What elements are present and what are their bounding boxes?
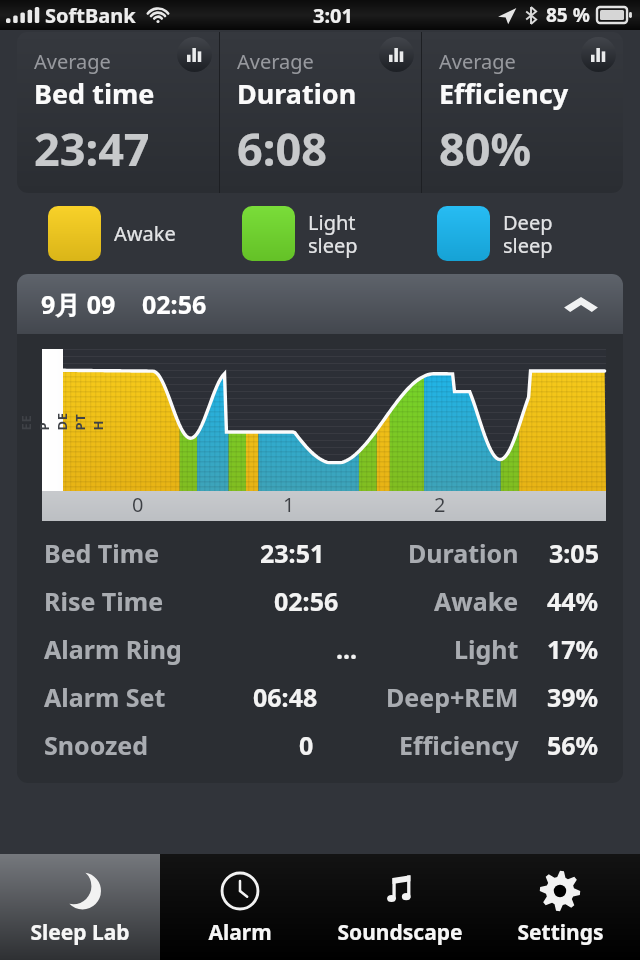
button[interactable]: Soundscape — [320, 854, 480, 960]
staticText: Duration — [237, 75, 357, 112]
staticText: Light — [454, 632, 519, 666]
staticText: 9月 09 — [41, 287, 116, 321]
staticText: 56% — [547, 728, 599, 762]
button[interactable]: Sleep Lab — [0, 854, 160, 960]
staticText: Efficiency — [399, 728, 519, 762]
staticText: 3:01 — [313, 2, 353, 29]
staticText: Alarm Ring — [44, 632, 182, 666]
staticText: 06:48 — [253, 680, 318, 714]
staticText: SoftBank — [45, 2, 136, 29]
staticText: Efficiency — [439, 75, 569, 112]
staticText: Alarm — [208, 918, 272, 947]
staticText: Light sleep — [308, 209, 358, 259]
staticText: Awake — [114, 220, 176, 247]
staticText: Deep+REM — [386, 680, 519, 714]
staticText: Average — [439, 48, 516, 75]
staticText: 44% — [547, 584, 599, 618]
staticText: 6:08 — [237, 118, 327, 179]
staticText: 0 — [132, 491, 144, 518]
button[interactable]: Settings — [480, 854, 640, 960]
staticText: 02:56 — [274, 584, 339, 618]
staticText: ... — [336, 632, 358, 666]
staticText: 39% — [547, 680, 599, 714]
button[interactable]: Show weekly chart: Bed time — [177, 37, 212, 72]
button[interactable]: Awake — [48, 206, 242, 261]
other: Collapse session — [563, 293, 599, 315]
staticText: 02:56 — [142, 287, 207, 321]
staticText: 1 — [283, 491, 295, 518]
staticText: 17% — [547, 632, 599, 666]
button[interactable]: Average — [220, 32, 421, 193]
button[interactable]: Light sleep — [242, 206, 437, 261]
staticText: Awake — [434, 584, 519, 618]
button[interactable]: Bed Time — [44, 529, 599, 577]
staticText: Duration — [408, 536, 519, 570]
staticText: Sleep Lab — [30, 918, 130, 947]
button[interactable]: Snoozed — [44, 721, 599, 769]
button[interactable]: Deep sleep — [437, 206, 632, 261]
staticText: Average — [34, 48, 111, 75]
button[interactable]: Rise Time — [44, 577, 599, 625]
staticText: Bed time — [34, 75, 155, 112]
staticText: 2 — [434, 491, 446, 518]
staticText: Soundscape — [337, 918, 463, 947]
staticText: Settings — [517, 918, 604, 947]
staticText: 23:51 — [260, 536, 325, 570]
button[interactable]: Average — [422, 32, 623, 193]
staticText: 85 % — [546, 2, 590, 28]
staticText: SLEEP DEPTH — [17, 409, 106, 430]
staticText: 3:05 — [549, 536, 599, 570]
staticText: 80% — [439, 118, 532, 179]
button[interactable]: Show weekly chart: Duration — [379, 37, 414, 72]
button[interactable]: Alarm Ring — [44, 625, 599, 673]
staticText: Snoozed — [44, 728, 149, 762]
staticText: Alarm Set — [44, 680, 166, 714]
staticText: Average — [237, 48, 314, 75]
staticText: 0 — [299, 728, 314, 762]
staticText: Deep sleep — [503, 209, 553, 259]
button[interactable]: Show weekly chart: Efficiency — [581, 37, 616, 72]
button[interactable]: Alarm Set — [44, 673, 599, 721]
staticText: Rise Time — [44, 584, 164, 618]
staticText: Bed Time — [44, 536, 160, 570]
button[interactable]: Average — [17, 32, 219, 193]
button[interactable]: 9月 09 — [17, 274, 623, 334]
button[interactable]: Alarm — [160, 854, 320, 960]
staticText: 23:47 — [34, 118, 150, 179]
